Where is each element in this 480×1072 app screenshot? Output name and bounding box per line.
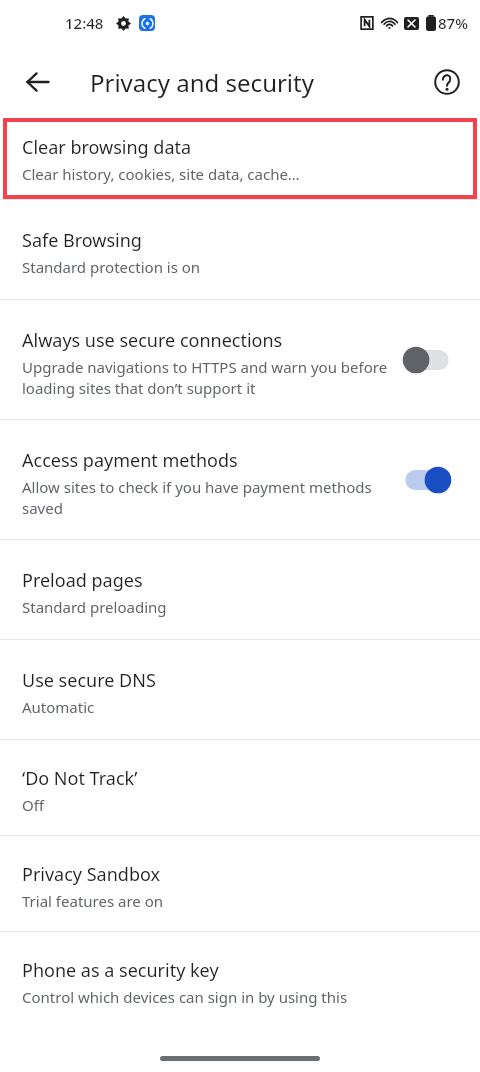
staticText: Use secure DNS (22, 668, 156, 693)
button[interactable]: Use secure DNS (0, 640, 480, 739)
staticText: Phone as a security key (22, 958, 219, 983)
staticText: Upgrade navigations to HTTPS and warn yo… (22, 357, 388, 399)
staticText: Standard protection is on (22, 257, 201, 277)
staticText: Automatic (22, 697, 95, 717)
button[interactable]: Always use secure connections (0, 300, 480, 419)
staticText: Clear browsing data (22, 135, 192, 160)
staticText: 87% (438, 13, 468, 33)
button[interactable]: Help (423, 58, 471, 106)
button[interactable]: Preload pages (0, 540, 480, 639)
staticText: Privacy Sandbox (22, 862, 161, 887)
staticText: 12:48 (65, 13, 104, 33)
staticText: Trial features are on (22, 891, 164, 911)
staticText: Privacy and security (90, 66, 314, 99)
staticText: Control which devices can sign in by usi… (22, 987, 348, 1007)
staticText: Preload pages (22, 568, 143, 593)
button[interactable]: ‘Do Not Track’ (0, 740, 480, 835)
staticText: Safe Browsing (22, 228, 142, 253)
staticText: Access payment methods (22, 448, 238, 473)
button[interactable]: Clear browsing data (3, 118, 477, 199)
button[interactable]: Access payment methods (0, 420, 480, 539)
staticText: Allow sites to check if you have payment… (22, 477, 388, 519)
staticText: Standard preloading (22, 597, 167, 617)
button[interactable]: Switch on (400, 462, 454, 498)
staticText: ‘Do Not Track’ (22, 766, 138, 791)
button[interactable]: Switch off (400, 342, 454, 378)
button[interactable]: Back (14, 58, 62, 106)
button[interactable]: Phone as a security key (0, 932, 480, 1012)
button[interactable]: Privacy Sandbox (0, 836, 480, 931)
staticText: Clear history, cookies, site data, cache… (22, 164, 300, 184)
button[interactable]: Safe Browsing (0, 200, 480, 299)
staticText: Always use secure connections (22, 328, 283, 353)
staticText: Off (22, 795, 45, 815)
